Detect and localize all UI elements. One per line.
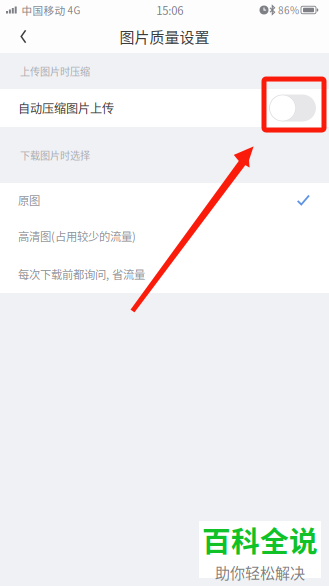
staticText: 百科全说 bbox=[202, 519, 318, 560]
staticText: 下载图片时选择 bbox=[20, 148, 90, 162]
staticText: 图片质量设置 bbox=[119, 26, 209, 47]
button[interactable]: 原图 bbox=[0, 183, 329, 217]
staticText: 助你轻松解决 bbox=[215, 561, 305, 583]
staticText: 自动压缩图片上传 bbox=[18, 99, 114, 117]
staticText: 中国移动 bbox=[17, 2, 67, 18]
button[interactable]: 自动压缩图片上传 bbox=[0, 89, 329, 127]
staticText: 高清图(占用较少的流量) bbox=[18, 228, 136, 244]
staticText: 86% bbox=[276, 3, 301, 17]
staticText: 4G bbox=[67, 3, 80, 17]
staticText: 每次下载前都询问, 省流量 bbox=[18, 266, 145, 282]
staticText: 15:06 bbox=[156, 2, 183, 18]
button[interactable]: 每次下载前都询问, 省流量 bbox=[0, 255, 329, 293]
staticText: 原图 bbox=[18, 192, 40, 208]
button[interactable]: 高清图(占用较少的流量) bbox=[0, 217, 329, 255]
staticText: 上传图片时压缩 bbox=[20, 64, 90, 78]
button[interactable]: Back bbox=[0, 20, 41, 53]
